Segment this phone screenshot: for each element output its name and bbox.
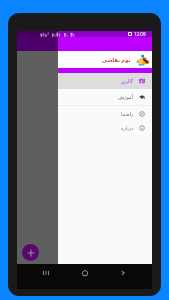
button[interactable]: Add painting <box>22 244 39 261</box>
button[interactable]: Back <box>114 264 132 281</box>
staticText: گالری <box>121 78 134 84</box>
staticText: درباره <box>121 125 134 131</box>
button[interactable]: درباره <box>58 121 152 135</box>
staticText: راهنما <box>121 111 134 117</box>
staticText: 12:09 <box>134 31 146 37</box>
button[interactable]: گالری <box>58 73 152 89</box>
button[interactable]: آموزش <box>58 89 152 105</box>
staticText: بوم نقاشی <box>102 56 131 63</box>
staticText: آموزش <box>118 94 134 100</box>
button[interactable]: Recents <box>37 264 55 281</box>
button[interactable]: راهنما <box>58 106 152 121</box>
button[interactable]: Home <box>76 264 94 281</box>
